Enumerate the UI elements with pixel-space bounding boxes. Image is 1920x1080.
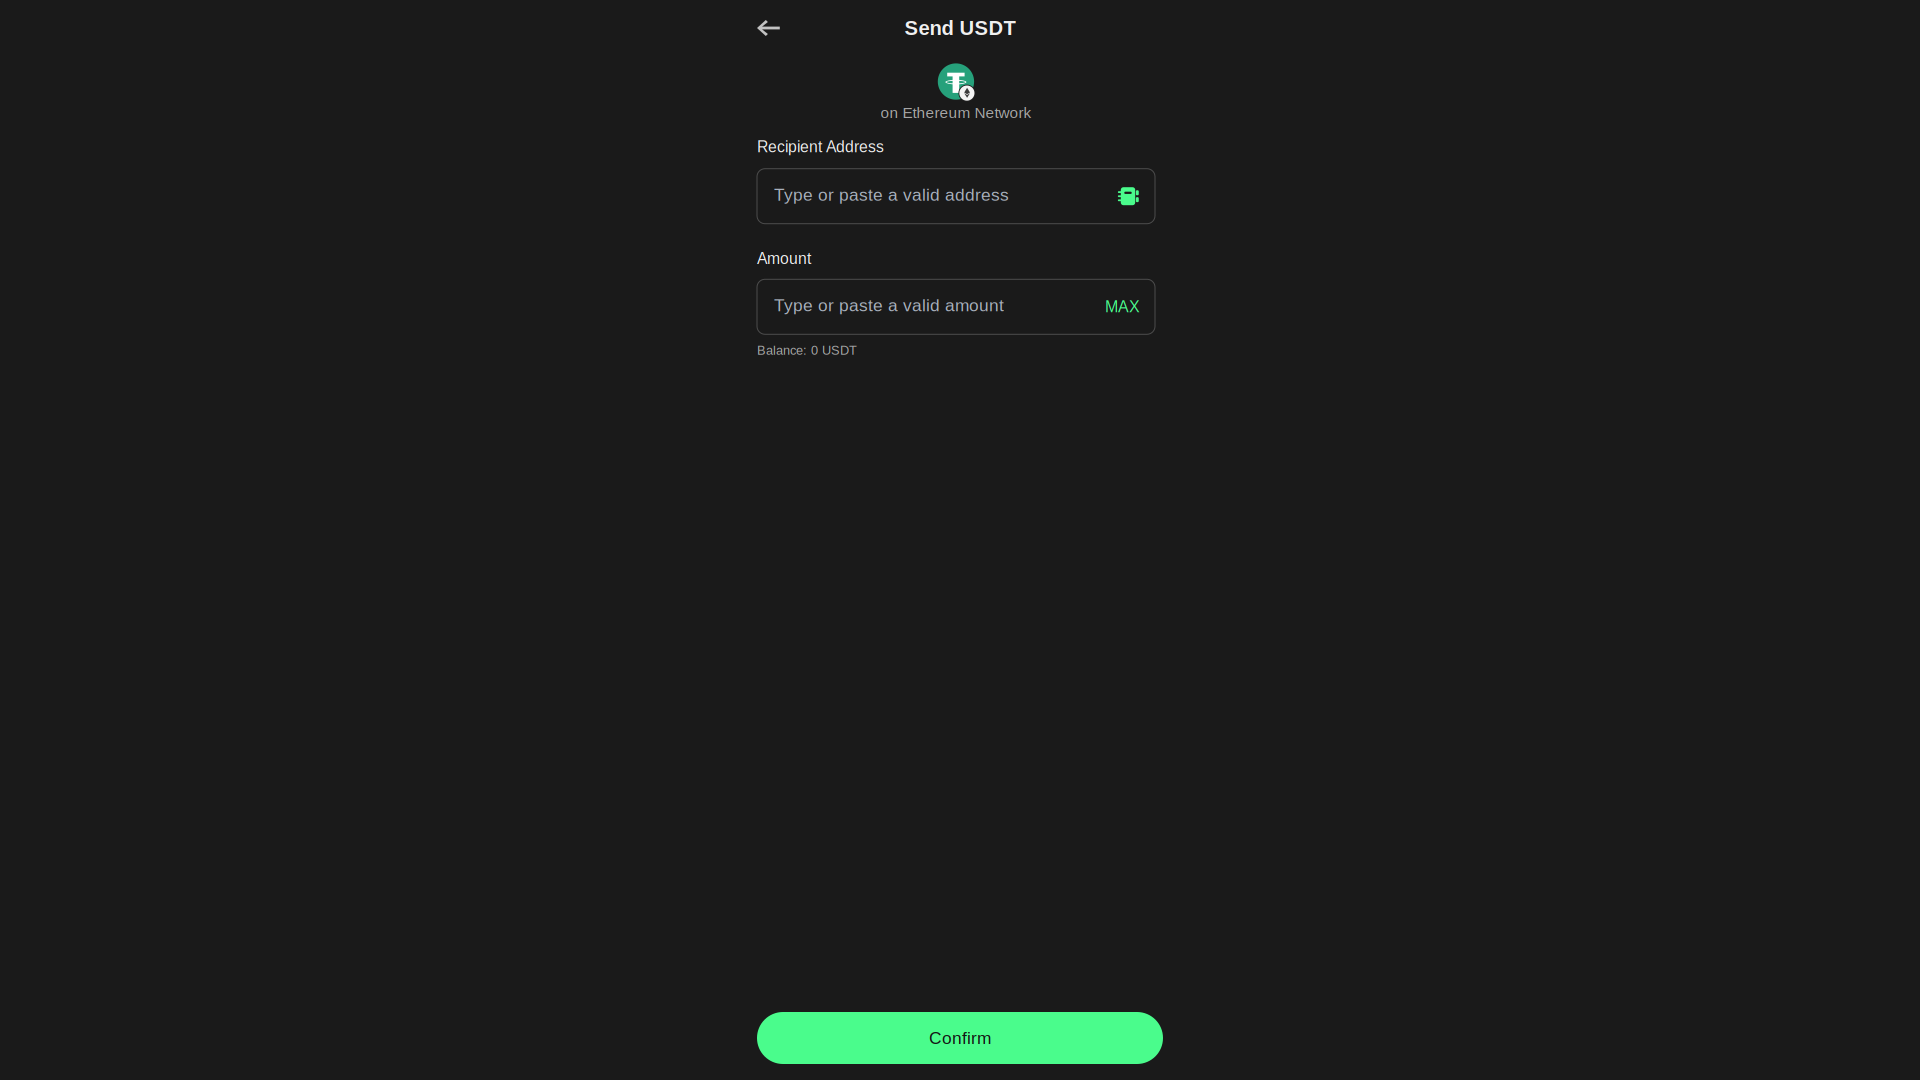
staticText: Type or paste a valid amount — [774, 296, 1004, 315]
staticText: Type or paste a valid address — [774, 185, 1009, 204]
staticText: Recipient Address — [757, 138, 884, 156]
staticText: Amount — [757, 250, 811, 267]
button[interactable]: Type or paste a valid amount — [757, 279, 1155, 334]
button[interactable]: Type or paste a valid address — [757, 169, 1155, 224]
staticText: on Ethereum Network — [880, 104, 1031, 121]
staticText: MAX — [1105, 298, 1140, 316]
button[interactable]: Back — [757, 11, 791, 45]
staticText: Confirm — [929, 1028, 991, 1048]
button[interactable]: Choose from address book — [1116, 187, 1140, 206]
button[interactable]: Confirm — [757, 1012, 1163, 1064]
staticText: Send USDT — [904, 17, 1015, 39]
button[interactable]: MAX — [1105, 298, 1140, 316]
staticText: Balance: 0 USDT — [757, 343, 857, 358]
